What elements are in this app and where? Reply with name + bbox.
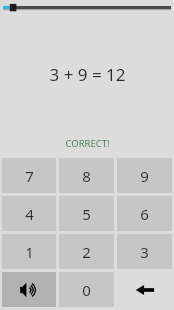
staticText: 7 [25,166,34,186]
staticText: 8 [82,166,91,186]
button[interactable]: 8 [59,158,114,193]
button[interactable]: 9 [117,158,172,193]
button[interactable]: 4 [2,196,56,231]
staticText: 0 [82,280,91,300]
button[interactable]: Progress slider [0,0,174,16]
button[interactable]: 1 [2,234,56,269]
button[interactable]: 5 [59,196,114,231]
button[interactable]: 3 [117,234,172,269]
button[interactable]: Speak the problem [2,272,56,307]
staticText: CORRECT! [65,137,110,150]
staticText: 9 [140,166,149,186]
button[interactable]: 2 [59,234,114,269]
button[interactable]: 6 [117,196,172,231]
staticText: 6 [140,204,149,224]
button[interactable]: 0 [59,272,114,307]
staticText: 3 + 9 = 12 [49,63,126,86]
staticText: 4 [25,204,34,224]
button[interactable]: Backspace [117,272,172,307]
staticText: 1 [25,242,34,262]
button[interactable]: 7 [2,158,56,193]
staticText: 5 [82,204,91,224]
staticText: 3 [140,242,149,262]
staticText: 2 [82,242,91,262]
